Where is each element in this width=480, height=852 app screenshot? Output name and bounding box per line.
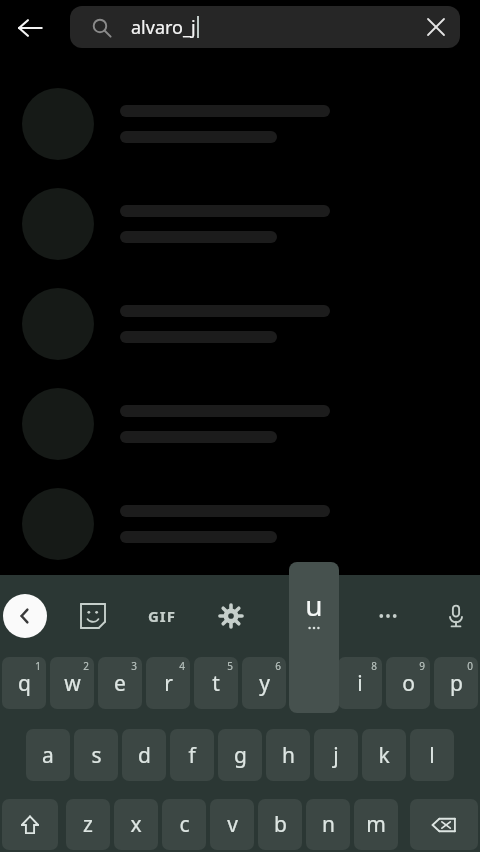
staticText: l [429, 741, 435, 770]
button[interactable]: Backspace [410, 799, 478, 850]
button[interactable]: y [242, 657, 286, 709]
button[interactable]: f [170, 729, 214, 781]
button[interactable]: a [26, 729, 70, 781]
button[interactable]: e [98, 657, 142, 709]
staticText: f [188, 741, 196, 770]
staticText: alvaro_j [131, 15, 196, 40]
staticText: v [227, 810, 238, 839]
staticText: e [114, 669, 126, 698]
staticText: 9 [419, 659, 425, 673]
staticText: s [91, 741, 102, 770]
button[interactable]: k [362, 729, 406, 781]
staticText: u [305, 586, 323, 624]
staticText: 2 [83, 659, 89, 673]
staticText: k [378, 741, 390, 770]
staticText: 8 [371, 659, 377, 673]
button[interactable]: o [386, 657, 430, 709]
button[interactable]: d [122, 729, 166, 781]
button[interactable]: u [289, 562, 339, 713]
button[interactable]: r [146, 657, 190, 709]
button[interactable]: z [66, 799, 110, 850]
staticText: GIF [148, 606, 176, 626]
staticText: z [83, 810, 93, 839]
button[interactable]: h [266, 729, 310, 781]
staticText: p [450, 669, 463, 698]
staticText: n [322, 810, 335, 839]
staticText: 3 [131, 659, 137, 673]
button[interactable]: m [354, 799, 398, 850]
button[interactable]: v [210, 799, 254, 850]
button[interactable]: n [306, 799, 350, 850]
staticText: 0 [467, 659, 473, 673]
button[interactable]: Voice input [434, 594, 478, 638]
button[interactable]: p [434, 657, 478, 709]
staticText: w [64, 669, 81, 698]
staticText: r [164, 669, 173, 698]
button[interactable]: Clear search [416, 7, 456, 47]
button[interactable]: GIF [140, 594, 184, 638]
button[interactable] [0, 176, 480, 276]
staticText: 5 [227, 659, 233, 673]
button[interactable]: alvaro_j [70, 6, 460, 48]
staticText: c [179, 810, 190, 839]
button[interactable]: g [218, 729, 262, 781]
staticText: h [282, 741, 295, 770]
button[interactable]: Stickers [71, 594, 115, 638]
staticText: j [333, 741, 339, 770]
button[interactable]: b [258, 799, 302, 850]
button[interactable]: Settings [209, 594, 253, 638]
button[interactable]: s [74, 729, 118, 781]
staticText: m [366, 810, 386, 839]
button[interactable]: t [194, 657, 238, 709]
button[interactable]: q [2, 657, 46, 709]
button[interactable] [0, 76, 480, 176]
staticText: b [274, 810, 287, 839]
button[interactable]: j [314, 729, 358, 781]
staticText: x [130, 810, 142, 839]
button[interactable]: i [338, 657, 382, 709]
button[interactable]: Close toolbar [3, 594, 47, 638]
button[interactable]: Shift [2, 799, 58, 850]
staticText: 1 [35, 659, 41, 673]
staticText: a [42, 741, 54, 770]
button[interactable]: c [162, 799, 206, 850]
button[interactable]: More options [366, 594, 410, 638]
staticText: o [402, 669, 415, 698]
button[interactable]: l [410, 729, 454, 781]
button[interactable]: x [114, 799, 158, 850]
button[interactable] [0, 276, 480, 376]
staticText: 6 [275, 659, 281, 673]
staticText: q [18, 669, 31, 698]
staticText: y [259, 669, 270, 698]
staticText: 4 [179, 659, 185, 673]
button[interactable] [0, 476, 480, 576]
button[interactable]: w [50, 657, 94, 709]
staticText: g [234, 741, 247, 770]
staticText: i [357, 669, 363, 698]
staticText: d [138, 741, 151, 770]
staticText: t [212, 669, 220, 698]
button[interactable]: Back [8, 6, 52, 50]
button[interactable] [0, 376, 480, 476]
